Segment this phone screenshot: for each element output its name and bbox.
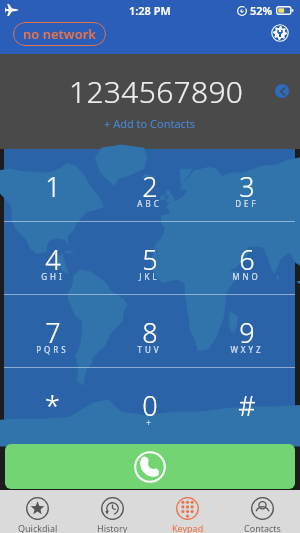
staticText: 0 <box>142 387 158 424</box>
staticText: 8 <box>142 314 158 351</box>
staticText: 1:28 PM <box>129 3 171 18</box>
button[interactable]: + Add to Contacts <box>98 114 202 133</box>
button[interactable]: Quickdial <box>0 490 75 533</box>
staticText: WXYZ <box>230 344 264 355</box>
staticText: * <box>45 387 60 424</box>
staticText: GHI <box>41 271 65 282</box>
button[interactable]: 2 <box>101 149 198 221</box>
button[interactable]: 0 <box>101 368 198 440</box>
staticText: 4 <box>45 241 61 278</box>
staticText: 7 <box>45 314 61 351</box>
staticText: # <box>238 387 256 424</box>
staticText: 3 <box>239 168 255 205</box>
button[interactable]: 7 <box>4 295 101 367</box>
staticText: 5 <box>142 241 158 278</box>
staticText: 1 <box>45 168 61 205</box>
staticText: Quickdial <box>18 522 58 533</box>
staticText: + Add to Contacts <box>104 116 196 131</box>
button[interactable]: no network <box>13 22 106 46</box>
button[interactable]: Keypad <box>150 490 225 533</box>
button[interactable]: 1 <box>4 149 101 221</box>
staticText: MNO <box>232 271 261 282</box>
staticText: TUV <box>137 344 162 355</box>
staticText: 52% <box>250 3 273 18</box>
button[interactable]: 8 <box>101 295 198 367</box>
staticText: 1234567890 <box>69 71 244 112</box>
button[interactable]: # <box>198 368 295 440</box>
button[interactable]: 9 <box>198 295 295 367</box>
staticText: JKL <box>139 271 160 282</box>
button[interactable]: Call <box>5 444 295 489</box>
staticText: 9 <box>239 314 255 351</box>
staticText: Contacts <box>244 522 281 533</box>
staticText: 2 <box>142 168 158 205</box>
staticText: ABC <box>137 198 162 209</box>
button[interactable]: Backspace <box>275 84 289 98</box>
button[interactable]: 5 <box>101 222 198 294</box>
button[interactable]: * <box>4 368 101 440</box>
staticText: Keypad <box>172 522 204 533</box>
staticText: PQRS <box>36 344 69 355</box>
button[interactable]: Contacts <box>225 490 300 533</box>
staticText: no network <box>23 25 96 43</box>
button[interactable]: 6 <box>198 222 295 294</box>
button[interactable]: History <box>75 490 150 533</box>
button[interactable]: Settings <box>270 23 289 42</box>
staticText: + <box>146 417 154 428</box>
button[interactable]: 4 <box>4 222 101 294</box>
staticText: DEF <box>235 198 259 209</box>
staticText: 6 <box>239 241 255 278</box>
button[interactable]: 3 <box>198 149 295 221</box>
staticText: History <box>97 522 128 533</box>
